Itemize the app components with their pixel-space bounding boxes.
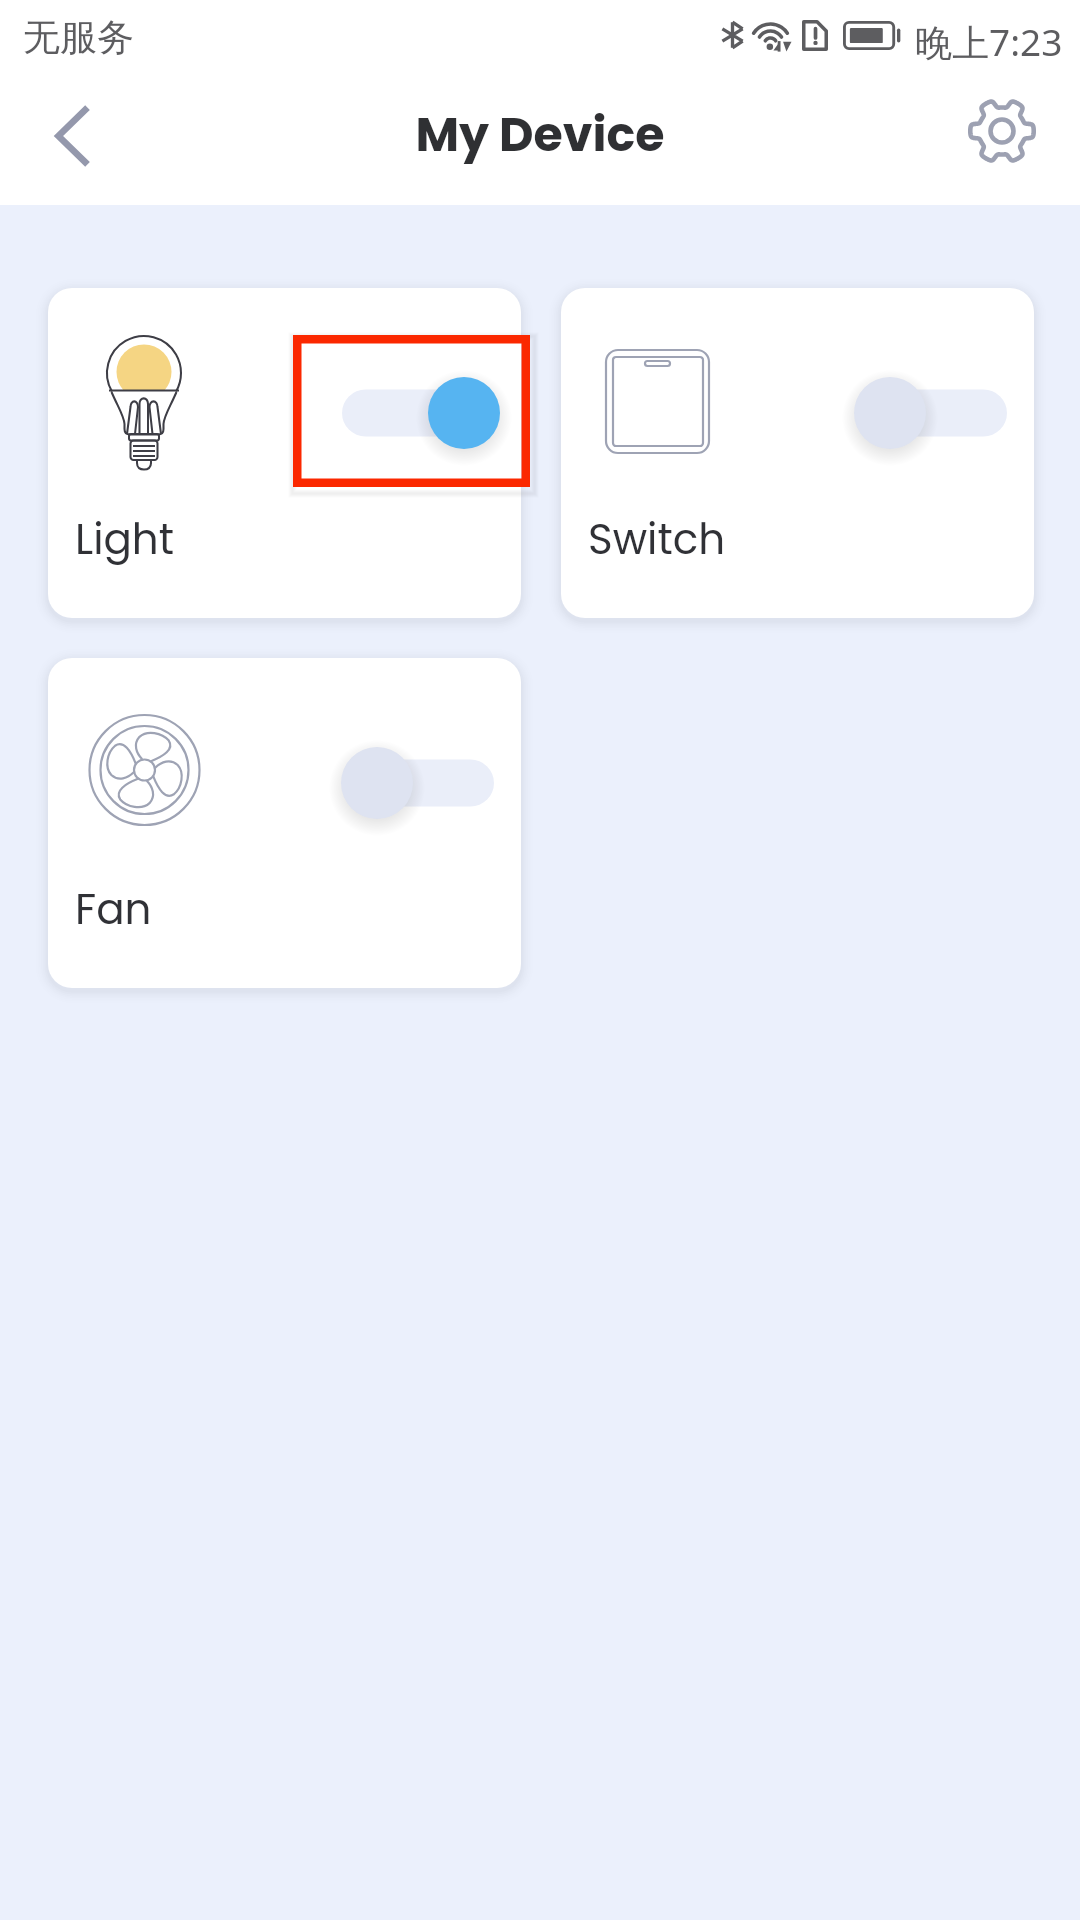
button[interactable]: Toggle Fan [48, 658, 521, 988]
staticText: My Device [0, 101, 1080, 167]
button[interactable]: Toggle Light [48, 288, 521, 618]
staticText: Switch [588, 510, 726, 569]
staticText: Light [75, 510, 175, 569]
button[interactable]: Back [12, 90, 104, 182]
staticText: 无服务 [23, 14, 134, 61]
button[interactable]: Toggle Fan [336, 736, 511, 830]
button[interactable]: Toggle Light [336, 366, 511, 460]
staticText: Fan [75, 880, 152, 939]
staticText: 晚上7:23 [915, 16, 1063, 67]
button[interactable]: Toggle Switch [849, 366, 1024, 460]
button[interactable]: Toggle Switch [561, 288, 1034, 618]
button[interactable]: Settings [956, 85, 1048, 177]
